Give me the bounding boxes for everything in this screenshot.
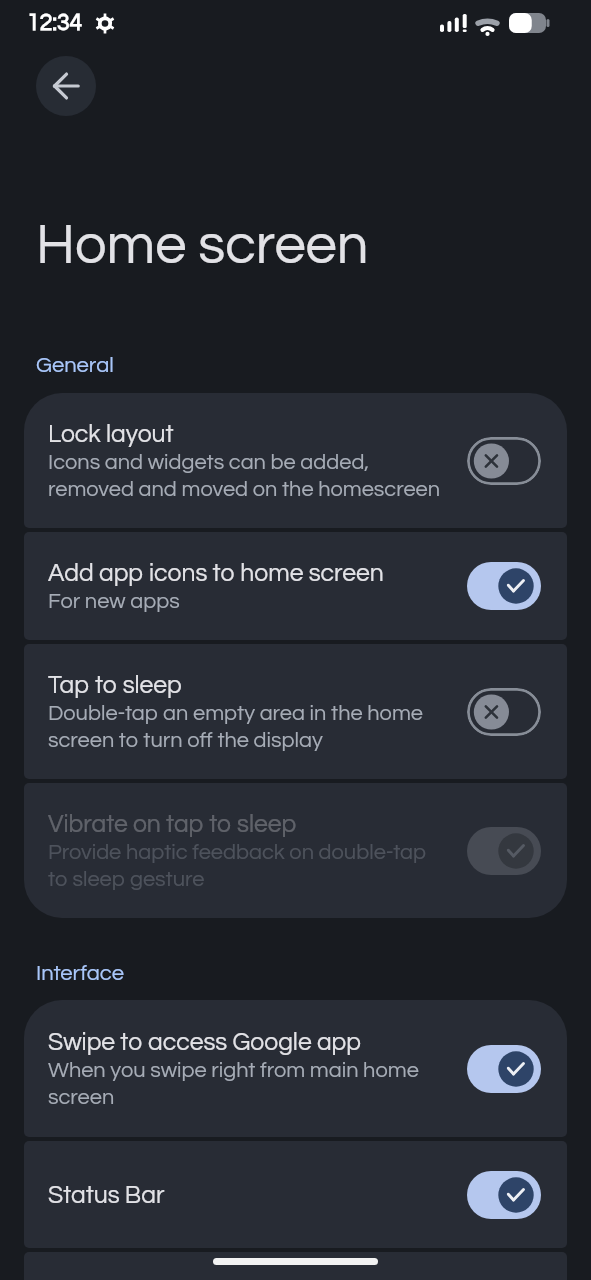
button[interactable]: Toggle off bbox=[467, 437, 541, 485]
button[interactable]: Vibrate on tap to sleep bbox=[24, 783, 567, 918]
staticText: Lock layout bbox=[48, 419, 174, 448]
button[interactable]: Tap to sleep bbox=[24, 644, 567, 779]
staticText: Swipe to access Google app bbox=[48, 1027, 361, 1056]
staticText: Provide haptic feedback on double-tap to… bbox=[48, 838, 427, 892]
staticText: Icons and widgets can be added, removed … bbox=[48, 448, 441, 502]
button[interactable]: Swipe to access Google app bbox=[24, 1000, 567, 1137]
button[interactable]: Notifications bbox=[24, 1252, 567, 1280]
button[interactable]: Toggle off bbox=[467, 688, 541, 736]
staticText: Add app icons to home screen bbox=[48, 558, 384, 587]
button[interactable]: Toggle on bbox=[467, 562, 541, 610]
staticText: When you swipe right from main home scre… bbox=[48, 1056, 419, 1110]
button[interactable]: Status Bar bbox=[24, 1141, 567, 1248]
staticText: Interface bbox=[36, 959, 125, 985]
staticText: 12:34 bbox=[27, 11, 83, 35]
button[interactable]: Lock layout bbox=[24, 393, 567, 528]
staticText: Tap to sleep bbox=[48, 670, 182, 699]
staticText: Double-tap an empty area in the home scr… bbox=[48, 699, 423, 753]
button[interactable]: Toggle on bbox=[467, 827, 541, 875]
staticText: Status Bar bbox=[48, 1180, 165, 1209]
staticText: For new apps bbox=[48, 587, 180, 614]
staticText: General bbox=[36, 351, 114, 377]
button[interactable]: Back bbox=[36, 56, 96, 116]
button[interactable]: Toggle on bbox=[467, 1045, 541, 1093]
staticText: Vibrate on tap to sleep bbox=[48, 809, 297, 838]
button[interactable]: Toggle on bbox=[467, 1171, 541, 1219]
button[interactable]: Add app icons to home screen bbox=[24, 532, 567, 640]
staticText: Home screen bbox=[36, 210, 369, 276]
